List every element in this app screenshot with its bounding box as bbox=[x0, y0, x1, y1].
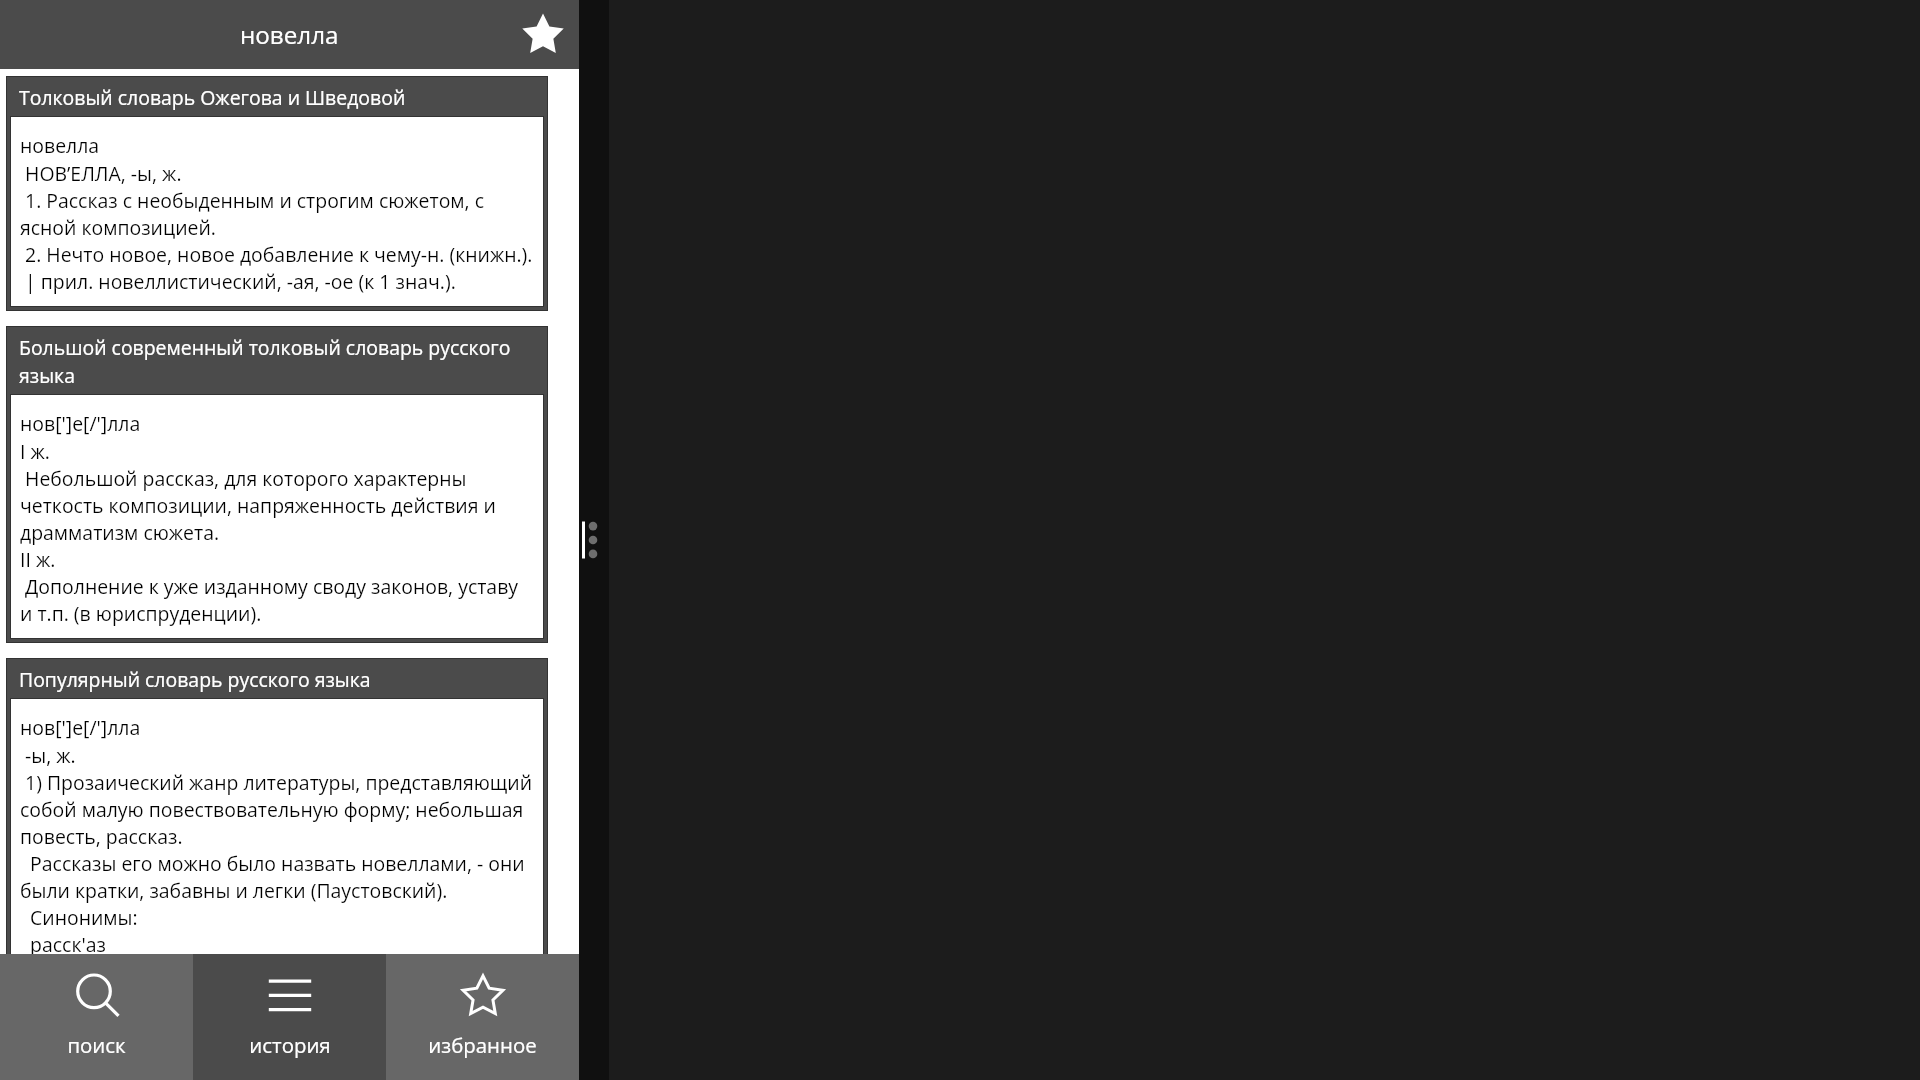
staticText: Популярный словарь русского языка bbox=[19, 666, 371, 692]
staticText: нов[']е[/']лла I ж. Небольшой рассказ, д… bbox=[20, 410, 534, 626]
staticText: новелла bbox=[240, 18, 339, 51]
button[interactable]: поиск bbox=[0, 954, 193, 1080]
button[interactable]: Большой современный толковый словарь рус… bbox=[6, 326, 548, 643]
button[interactable]: Толковый словарь Ожегова и Шведовой bbox=[6, 76, 548, 311]
staticText: избранное bbox=[428, 1031, 537, 1059]
button[interactable]: Добавить в избранное bbox=[510, 0, 579, 69]
staticText: Большой современный толковый словарь рус… bbox=[19, 334, 535, 388]
staticText: история bbox=[249, 1031, 331, 1059]
button[interactable]: избранное bbox=[386, 954, 579, 1080]
staticText: Толковый словарь Ожегова и Шведовой bbox=[19, 84, 406, 110]
button[interactable]: история bbox=[193, 954, 386, 1080]
button[interactable]: Изменить размер окна bbox=[579, 0, 609, 1080]
staticText: поиск bbox=[67, 1031, 126, 1059]
staticText: нов[']е[/']лла -ы, ж. 1) Прозаический жа… bbox=[20, 714, 534, 954]
staticText: новелла НОВ’ЕЛЛА, -ы, ж. 1. Рассказ с не… bbox=[20, 132, 534, 294]
button[interactable]: Популярный словарь русского языка bbox=[6, 658, 548, 954]
